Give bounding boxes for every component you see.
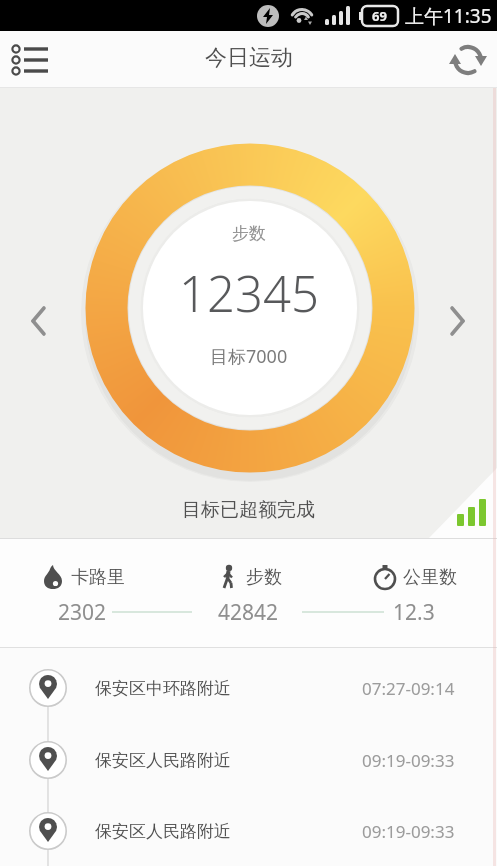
- staticText: 目标7000: [210, 344, 288, 369]
- staticText: 保安区人民路附近: [95, 750, 231, 771]
- staticText: 12345: [179, 260, 319, 327]
- staticText: 69: [372, 7, 387, 25]
- staticText: 12.3: [393, 598, 435, 627]
- staticText: 今日运动: [205, 44, 293, 72]
- staticText: 09:19-09:33: [362, 749, 455, 772]
- staticText: 42842: [218, 598, 279, 627]
- button[interactable]: 卡路里: [0, 538, 165, 648]
- button[interactable]: 公里数: [331, 538, 497, 648]
- staticText: 07:27-09:14: [362, 677, 455, 700]
- button[interactable]: [439, 31, 497, 88]
- staticText: 09:19-09:33: [362, 820, 455, 843]
- staticText: 目标已超额完成: [182, 498, 315, 522]
- button[interactable]: 步数: [165, 538, 331, 648]
- staticText: 步数: [246, 566, 282, 589]
- button[interactable]: [434, 292, 480, 352]
- staticText: 2302: [58, 598, 107, 627]
- staticText: 保安区中环路附近: [95, 678, 231, 699]
- button[interactable]: 保安区人民路附近: [0, 796, 497, 866]
- button[interactable]: 保安区中环路附近: [0, 652, 497, 724]
- staticText: 公里数: [403, 566, 457, 589]
- button[interactable]: [16, 292, 62, 352]
- staticText: 上午11:35: [405, 3, 492, 29]
- button[interactable]: 保安区人民路附近: [0, 724, 497, 796]
- staticText: 卡路里: [71, 566, 125, 589]
- staticText: 步数: [232, 223, 266, 244]
- button[interactable]: [0, 31, 60, 88]
- staticText: 保安区人民路附近: [95, 821, 231, 842]
